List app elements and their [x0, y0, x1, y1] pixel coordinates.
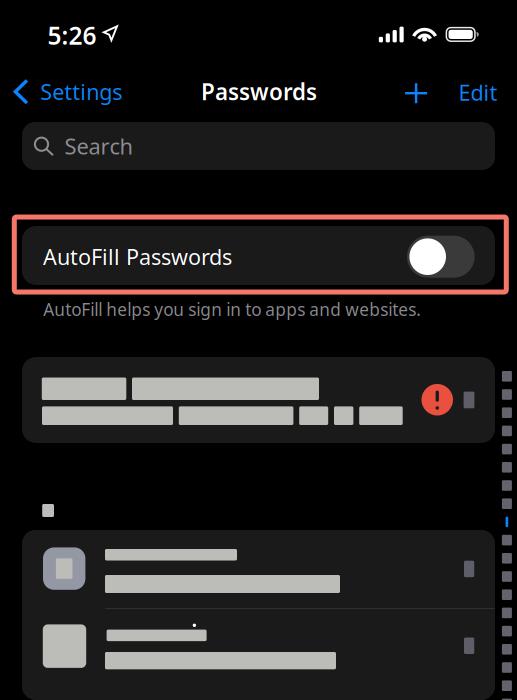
button[interactable] — [22, 530, 495, 608]
staticText: AutoFill helps you sign in to apps and w… — [43, 298, 421, 321]
button[interactable]: Settings — [0, 70, 132, 113]
staticText: 5:26 — [48, 19, 97, 52]
button[interactable]: AutoFill Passwords — [22, 226, 495, 285]
staticText: Settings — [40, 77, 122, 106]
staticText: AutoFill Passwords — [43, 242, 232, 271]
staticText: Edit — [458, 78, 497, 107]
button[interactable] — [22, 357, 495, 443]
button[interactable]: Edit — [446, 69, 509, 116]
button[interactable]: Search — [22, 122, 495, 170]
button[interactable]: Add password — [394, 73, 438, 113]
staticText: Search — [64, 132, 133, 161]
staticText: Passwords — [201, 77, 317, 106]
button[interactable] — [22, 609, 495, 700]
